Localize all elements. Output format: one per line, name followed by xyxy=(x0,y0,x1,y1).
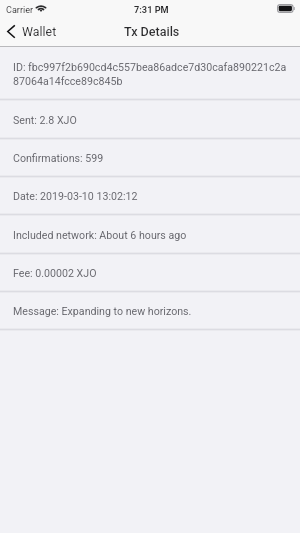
staticText: Tx Details xyxy=(124,24,180,39)
staticText: Fee: 0.00002 XJO xyxy=(13,267,97,279)
staticText: Date: 2019-03-10 13:02:12 xyxy=(13,190,138,202)
button[interactable]: Fee: 0.00002 XJO xyxy=(0,255,300,293)
staticText: Confirmations: 599 xyxy=(13,152,104,164)
staticText: Sent: 2.8 XJO xyxy=(13,114,77,126)
button[interactable]: Message: Expanding to new horizons. xyxy=(0,293,300,331)
staticText: Included network: About 6 hours ago xyxy=(13,229,187,241)
staticText: Message: Expanding to new horizons. xyxy=(13,305,192,317)
button[interactable]: ID: fbc997f2b690cd4c557bea86adce7d30cafa… xyxy=(0,47,300,101)
staticText: 7:31 PM xyxy=(134,4,169,15)
staticText: Carrier xyxy=(6,5,34,16)
button[interactable]: Date: 2019-03-10 13:02:12 xyxy=(0,178,300,216)
staticText: Wallet xyxy=(22,24,57,39)
button[interactable]: Included network: About 6 hours ago xyxy=(0,216,300,255)
staticText: ID: fbc997f2b690cd4c557bea86adce7d30cafa… xyxy=(13,61,289,87)
button[interactable]: Sent: 2.8 XJO xyxy=(0,101,300,140)
button[interactable]: Confirmations: 599 xyxy=(0,140,300,178)
button[interactable]: Back to Wallet xyxy=(0,22,65,41)
